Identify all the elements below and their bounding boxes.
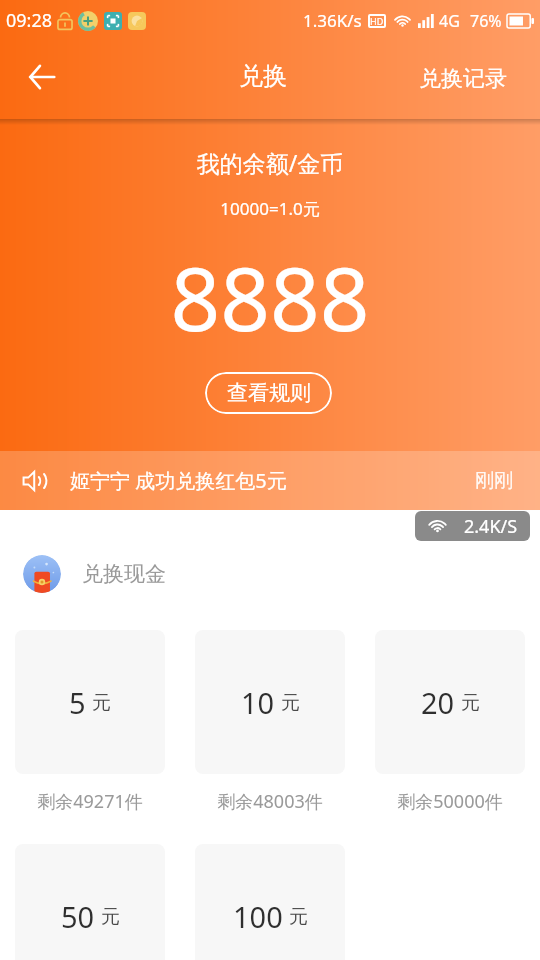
staticText: 剩余50000件 xyxy=(375,789,525,814)
staticText: 100 xyxy=(233,897,283,936)
button[interactable]: 姬宁宁 成功兑换红包5元 xyxy=(0,451,540,510)
button[interactable]: 100 xyxy=(195,844,345,960)
button[interactable]: 5 xyxy=(15,630,165,774)
staticText: 剩余49271件 xyxy=(15,789,165,814)
staticText: 元 xyxy=(461,691,480,715)
button[interactable]: 兑换现金 xyxy=(23,548,166,600)
staticText: 查看规则 xyxy=(227,380,311,406)
staticText: HD xyxy=(370,15,384,27)
staticText: 元 xyxy=(101,905,120,929)
staticText: 我的余额/金币 xyxy=(0,147,540,178)
staticText: 20 xyxy=(421,683,455,722)
staticText: 4G xyxy=(439,10,460,32)
staticText: 2.4K/S xyxy=(464,514,518,539)
staticText: 1.36K/s xyxy=(303,9,362,32)
button[interactable]: 20 xyxy=(375,630,525,774)
staticText: 兑换 xyxy=(239,61,287,91)
staticText: 10000=1.0元 xyxy=(0,197,540,220)
button[interactable]: 查看规则 xyxy=(205,372,332,414)
staticText: 兑换记录 xyxy=(419,65,507,93)
staticText: 10 xyxy=(241,683,275,722)
staticText: 8888 xyxy=(0,238,540,356)
staticText: 50 xyxy=(61,897,95,936)
staticText: 元 xyxy=(92,691,111,715)
staticText: 姬宁宁 成功兑换红包5元 xyxy=(70,467,287,494)
staticText: 09:28 xyxy=(6,8,53,33)
button[interactable]: Back xyxy=(20,55,64,99)
staticText: 元 xyxy=(289,905,308,929)
staticText: 5 xyxy=(69,683,86,722)
staticText: 76% xyxy=(470,10,502,32)
staticText: 兑换现金 xyxy=(82,561,166,587)
button[interactable]: 兑换记录 xyxy=(419,65,507,93)
staticText: 元 xyxy=(281,691,300,715)
button[interactable]: 50 xyxy=(15,844,165,960)
staticText: 刚刚 xyxy=(475,469,513,493)
button[interactable]: 10 xyxy=(195,630,345,774)
staticText: 剩余48003件 xyxy=(195,789,345,814)
